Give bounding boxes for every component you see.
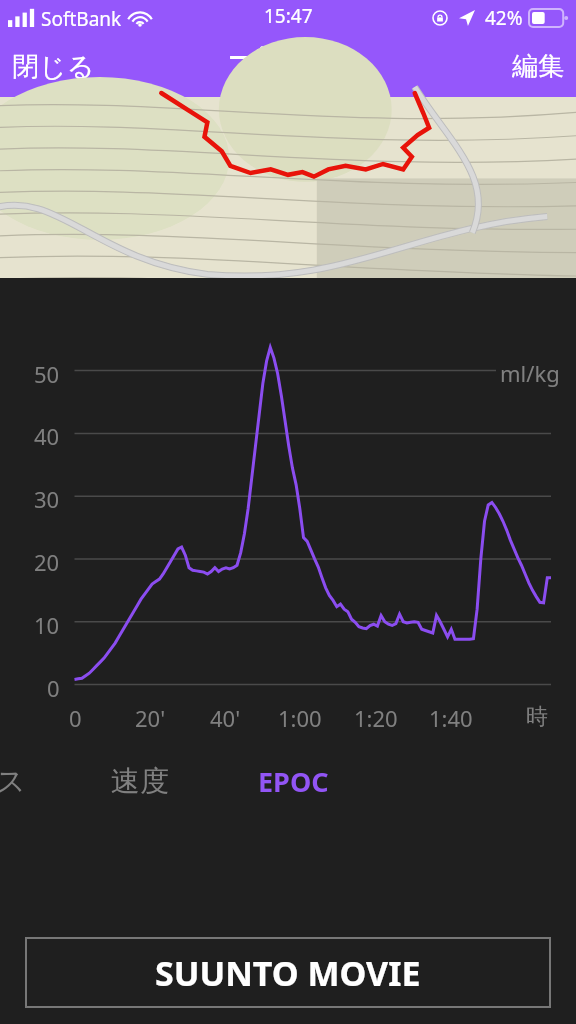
- staticText: 0: [47, 673, 60, 703]
- staticText: 30: [34, 484, 60, 514]
- button[interactable]: 速度: [109, 749, 171, 809]
- button[interactable]: 編集: [500, 42, 576, 91]
- staticText: 40': [210, 703, 241, 733]
- staticText: 20: [34, 547, 60, 577]
- button[interactable]: EPOC: [256, 749, 331, 809]
- staticText: 編集: [512, 50, 564, 83]
- staticText: 20': [135, 703, 166, 733]
- staticText: 1:40: [429, 703, 473, 733]
- button[interactable]: SUUNTO MOVIE: [25, 937, 551, 1008]
- staticText: 閉じる: [12, 50, 95, 84]
- staticText: SoftBank: [41, 6, 122, 32]
- staticText: ml/kg: [500, 358, 560, 388]
- staticText: 40: [34, 421, 60, 451]
- staticText: 10: [34, 610, 60, 640]
- staticText: ス: [0, 763, 26, 800]
- staticText: 1:00: [278, 703, 322, 733]
- staticText: SUUNTO MOVIE: [155, 950, 421, 996]
- staticText: 0: [69, 703, 82, 733]
- staticText: EPOC: [258, 763, 329, 795]
- staticText: 50: [34, 359, 60, 389]
- button[interactable]: 閉じる: [0, 42, 107, 92]
- staticText: 15:47: [264, 3, 313, 29]
- staticText: 時: [526, 703, 548, 731]
- staticText: 1:20: [354, 703, 398, 733]
- staticText: 速度: [111, 763, 169, 795]
- staticText: 42%: [485, 5, 523, 31]
- staticText: ゴルフ: [224, 40, 353, 93]
